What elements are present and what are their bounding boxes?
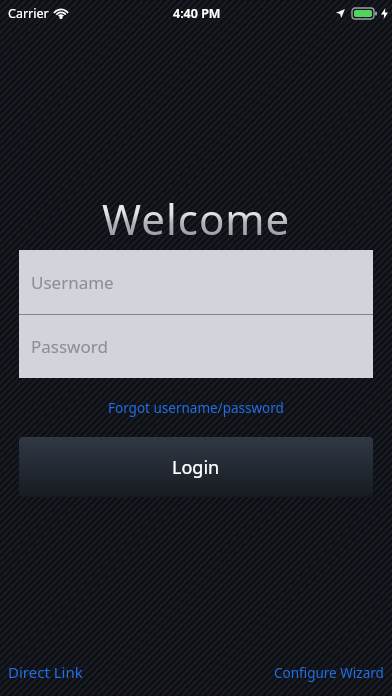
- button[interactable]: Login: [19, 437, 373, 497]
- staticText: Login: [172, 455, 220, 480]
- button[interactable]: Username: [19, 250, 373, 314]
- button[interactable]: Forgot username/password: [108, 399, 284, 417]
- staticText: Password: [31, 335, 108, 358]
- staticText: Username: [31, 271, 114, 294]
- staticText: 4:40 PM: [173, 5, 221, 22]
- staticText: Carrier: [8, 5, 49, 22]
- button[interactable]: Password: [19, 315, 373, 378]
- button[interactable]: Configure Wizard: [274, 664, 384, 682]
- button[interactable]: Direct Link: [8, 662, 83, 682]
- staticText: Welcome: [102, 190, 291, 247]
